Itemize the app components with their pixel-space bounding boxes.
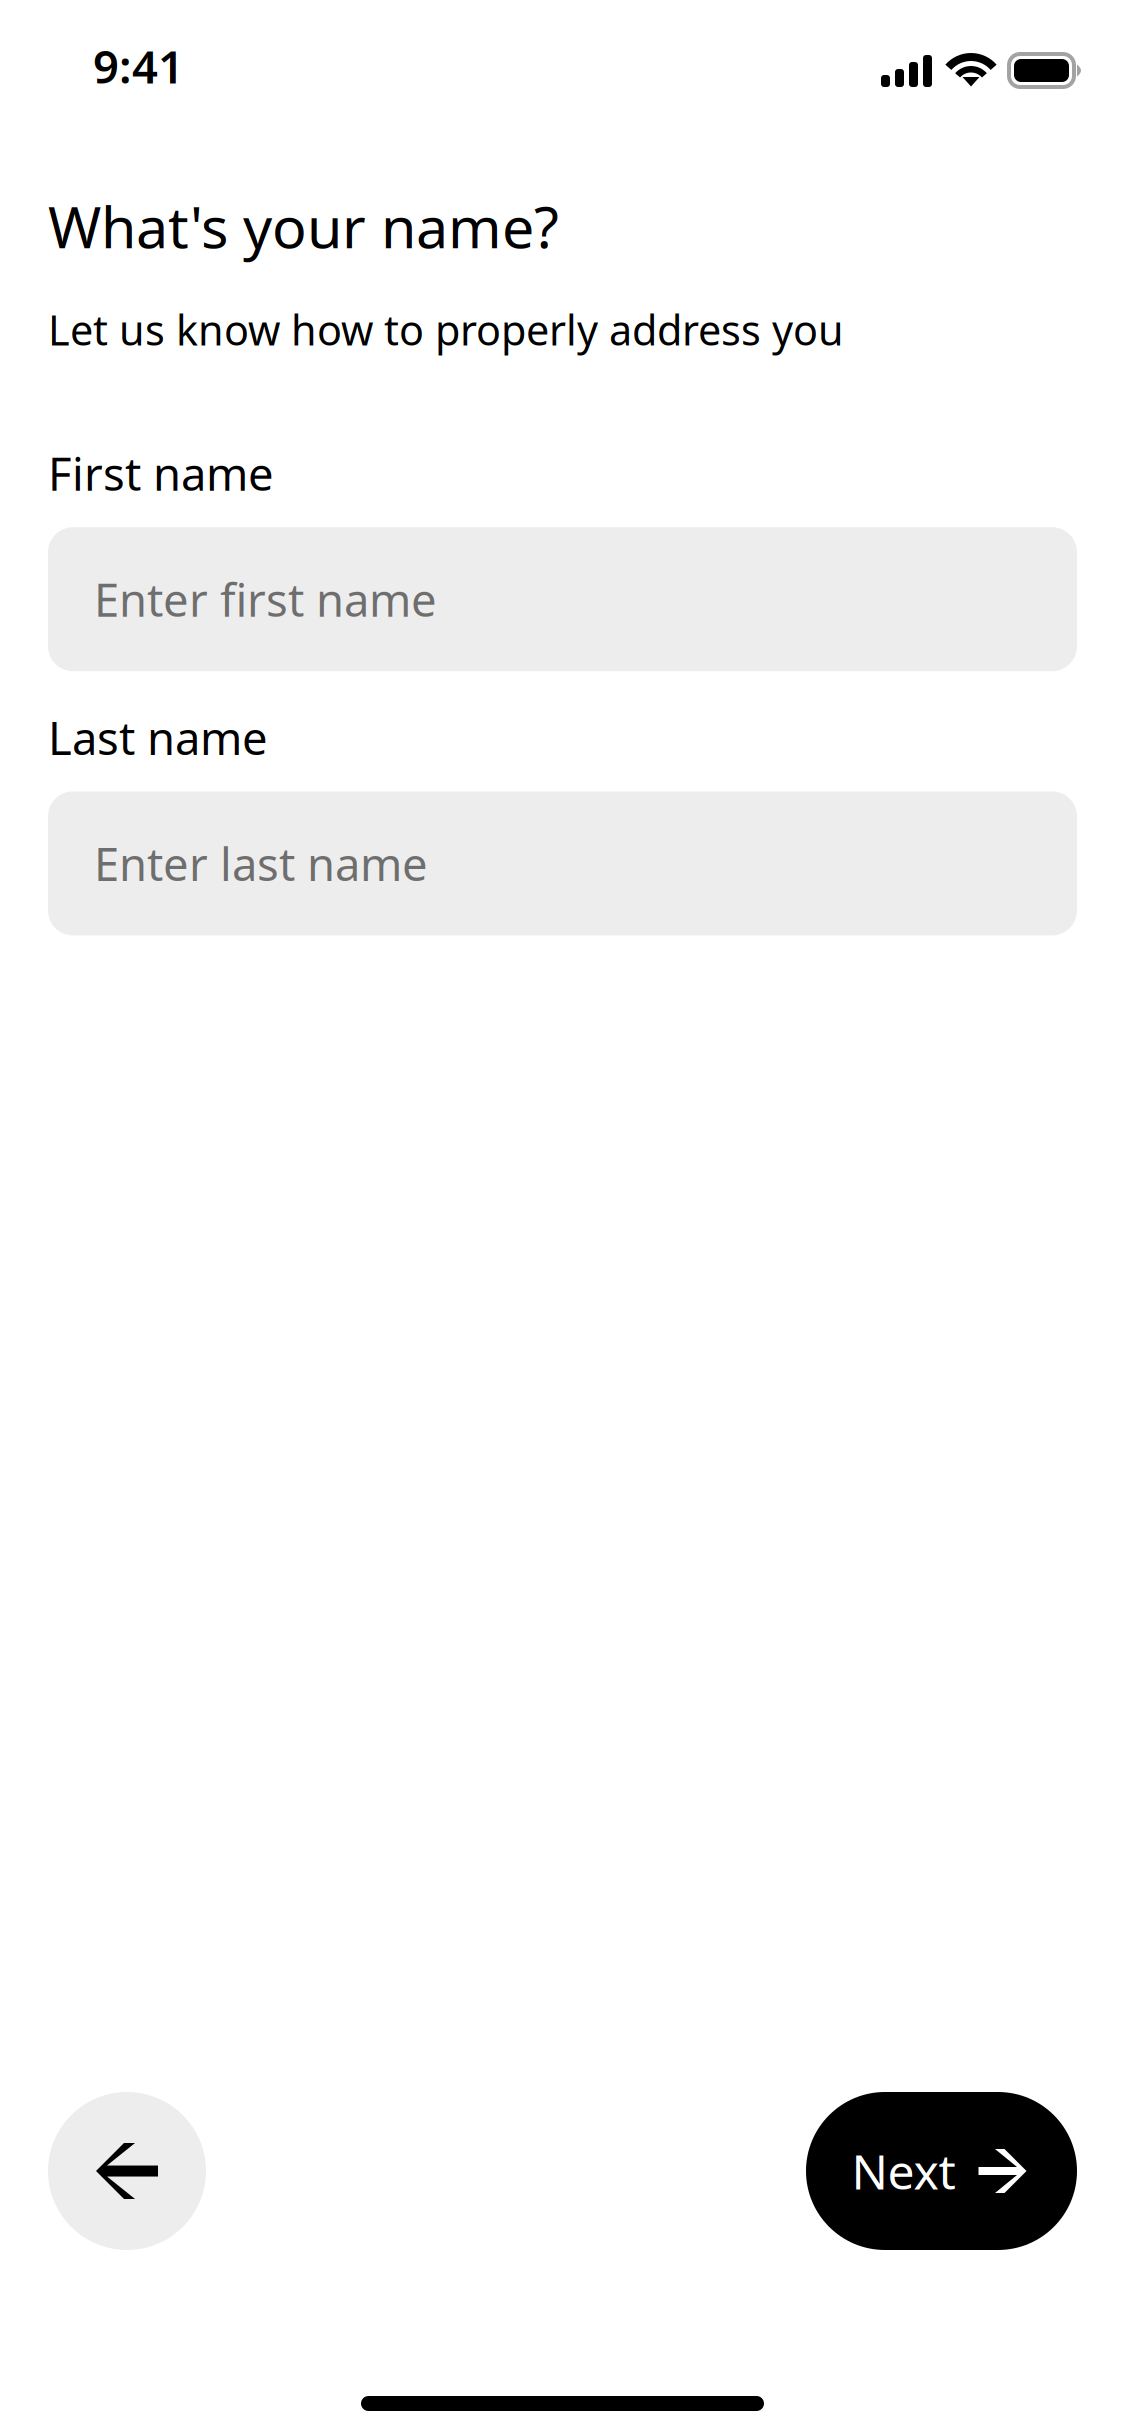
- staticText: Next: [851, 2139, 955, 2203]
- staticText: Let us know how to properly address you: [48, 302, 844, 357]
- staticText: First name: [48, 443, 274, 503]
- button[interactable]: Enter last name: [48, 791, 1077, 935]
- staticText: 9:41: [93, 36, 184, 96]
- button[interactable]: Back: [48, 2092, 206, 2250]
- button[interactable]: Enter first name: [48, 527, 1077, 671]
- staticText: What's your name?: [48, 188, 559, 264]
- staticText: Enter last name: [94, 833, 428, 893]
- staticText: Enter first name: [94, 569, 437, 629]
- button[interactable]: Next: [806, 2092, 1077, 2250]
- staticText: Last name: [48, 707, 268, 767]
